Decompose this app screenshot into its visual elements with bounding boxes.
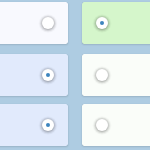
button[interactable] bbox=[0, 104, 68, 146]
button[interactable]: Selected option bbox=[93, 14, 111, 32]
button[interactable]: Option bbox=[93, 116, 111, 134]
button[interactable] bbox=[82, 2, 150, 44]
button[interactable] bbox=[0, 2, 68, 44]
button[interactable] bbox=[0, 54, 68, 96]
button[interactable] bbox=[82, 104, 150, 146]
button[interactable]: Selected option bbox=[39, 66, 57, 84]
button[interactable]: Selected option bbox=[39, 116, 57, 134]
button[interactable] bbox=[82, 54, 150, 96]
button[interactable]: Option bbox=[39, 14, 57, 32]
button[interactable]: Option bbox=[93, 66, 111, 84]
